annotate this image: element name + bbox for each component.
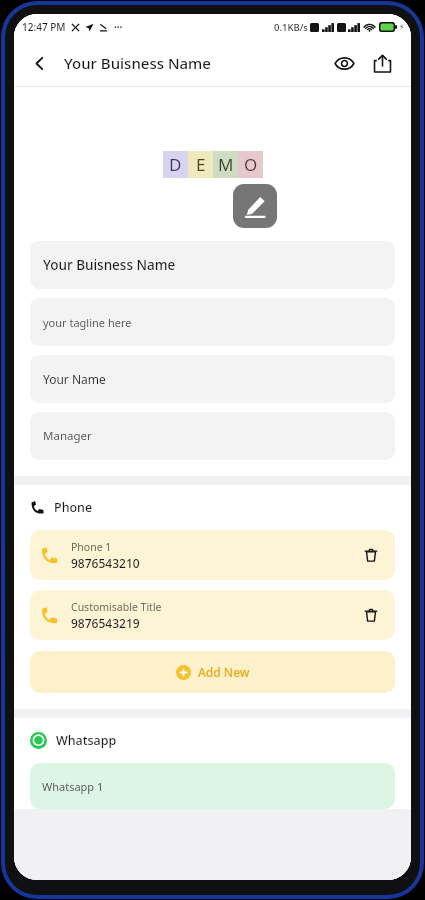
staticText: Your Buisness Name xyxy=(64,53,211,73)
staticText: 0.1KB/s xyxy=(274,21,308,34)
staticText: 9876543210 xyxy=(71,555,140,571)
staticText: Phone 1 xyxy=(71,540,112,554)
button[interactable]: Manager xyxy=(30,412,395,460)
button[interactable]: Your Buisness Name xyxy=(30,241,395,289)
button[interactable]: Add New xyxy=(30,651,395,693)
staticText: Phone xyxy=(54,499,93,516)
staticText: Add New xyxy=(198,664,250,680)
button[interactable]: Share xyxy=(363,44,401,82)
button[interactable]: Delete xyxy=(357,541,385,569)
staticText: ··· xyxy=(114,20,123,34)
staticText: 9876543219 xyxy=(71,615,140,631)
button[interactable]: Preview xyxy=(325,44,363,82)
staticText: ⚡ xyxy=(399,23,405,32)
staticText: Customisable Title xyxy=(71,600,162,614)
staticText: Your Name xyxy=(43,371,106,387)
staticText: 12:47 PM xyxy=(22,20,66,34)
staticText: Your Buisness Name xyxy=(43,256,176,274)
button[interactable]: Back xyxy=(20,44,58,82)
button[interactable]: your tagline here xyxy=(30,298,395,346)
button[interactable]: Your Name xyxy=(30,355,395,403)
button[interactable]: D xyxy=(151,102,275,226)
staticText: Whatsapp xyxy=(56,732,117,749)
button[interactable]: Delete xyxy=(357,601,385,629)
staticText: D xyxy=(169,153,182,176)
button[interactable]: Edit logo xyxy=(233,184,277,228)
staticText: Whatsapp 1 xyxy=(42,779,104,794)
staticText: your tagline here xyxy=(43,315,132,330)
staticText: M xyxy=(218,153,234,176)
button[interactable]: Phone 1 xyxy=(30,530,395,580)
button[interactable]: Customisable Title xyxy=(30,590,395,640)
staticText: O xyxy=(244,153,258,176)
button[interactable]: Whatsapp 1 xyxy=(30,763,395,809)
staticText: E xyxy=(196,153,206,176)
staticText: Manager xyxy=(43,428,92,444)
